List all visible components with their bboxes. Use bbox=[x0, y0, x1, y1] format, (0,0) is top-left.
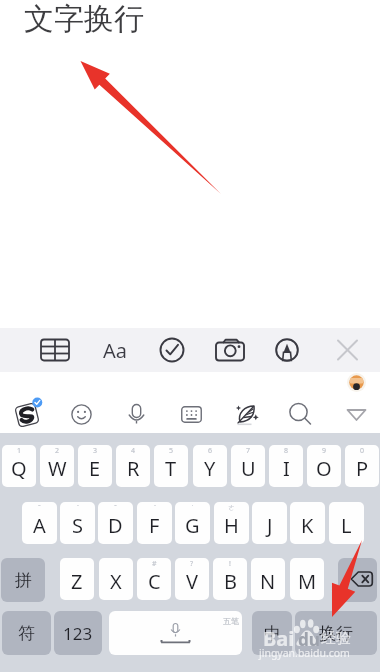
staticText: R bbox=[127, 455, 140, 482]
button[interactable]: 换行 bbox=[295, 611, 377, 655]
staticText: 1 bbox=[17, 446, 22, 456]
button[interactable]: ˊ bbox=[60, 502, 95, 544]
staticText: ㄜ bbox=[228, 503, 236, 512]
staticText: 中 bbox=[264, 623, 281, 644]
button[interactable]: Search bbox=[284, 398, 315, 429]
staticText: ˉ bbox=[38, 503, 41, 513]
staticText: J bbox=[267, 512, 273, 539]
button[interactable]: 0 bbox=[345, 445, 379, 487]
staticText: W bbox=[48, 455, 67, 482]
staticText: 9 bbox=[322, 446, 327, 456]
staticText: Aa bbox=[103, 337, 127, 364]
staticText: ! bbox=[229, 559, 231, 569]
staticText: E bbox=[89, 455, 101, 482]
button[interactable]: 6 bbox=[193, 445, 227, 487]
button[interactable]: Sogou input bbox=[11, 399, 43, 431]
button[interactable]: 7 bbox=[231, 445, 265, 487]
button[interactable]: 5 bbox=[154, 445, 188, 487]
button[interactable]: 1 bbox=[2, 445, 36, 487]
staticText: 4 bbox=[131, 446, 136, 456]
staticText: F bbox=[149, 512, 160, 539]
button[interactable]: Aa bbox=[95, 328, 135, 372]
staticText: du bbox=[298, 628, 320, 651]
staticText: 符 bbox=[18, 623, 35, 644]
button[interactable]: 123 bbox=[54, 611, 102, 655]
button[interactable]: Backspace bbox=[338, 558, 377, 602]
staticText: L bbox=[341, 512, 352, 539]
button[interactable]: 2 bbox=[40, 445, 74, 487]
staticText: G bbox=[185, 512, 200, 539]
staticText: T bbox=[165, 455, 177, 482]
staticText: ˇ bbox=[114, 503, 117, 513]
button[interactable]: Hide keyboard bbox=[341, 399, 372, 430]
staticText: Q bbox=[11, 455, 27, 482]
staticText: D bbox=[108, 512, 123, 539]
button[interactable]: 3 bbox=[78, 445, 112, 487]
staticText: jingyan.baidu.com bbox=[259, 646, 350, 660]
button[interactable]: ˙ bbox=[175, 502, 210, 544]
staticText: M bbox=[298, 568, 317, 595]
staticText: 8 bbox=[284, 446, 289, 456]
button[interactable]: 8 bbox=[269, 445, 303, 487]
button[interactable]: ˉ bbox=[22, 502, 57, 544]
staticText: O bbox=[316, 455, 332, 482]
staticText: K bbox=[301, 512, 314, 539]
button[interactable]: Draw bbox=[267, 328, 307, 372]
button[interactable]: M bbox=[290, 558, 324, 600]
button[interactable]: ? bbox=[175, 558, 209, 600]
staticText: B bbox=[224, 568, 237, 595]
button[interactable]: Voice input bbox=[121, 399, 152, 430]
button[interactable]: ˇ bbox=[98, 502, 133, 544]
button[interactable]: Space bbox=[109, 611, 242, 655]
button[interactable]: N bbox=[251, 558, 285, 600]
staticText: 换行 bbox=[319, 623, 353, 644]
button[interactable]: Z bbox=[60, 558, 94, 600]
staticText: S bbox=[72, 512, 83, 539]
staticText: 123 bbox=[63, 622, 93, 645]
button[interactable]: Checklist bbox=[152, 328, 192, 372]
staticText: ˋ bbox=[154, 503, 156, 513]
button[interactable]: # bbox=[137, 558, 171, 600]
staticText: C bbox=[148, 568, 161, 595]
staticText: 6 bbox=[208, 446, 213, 456]
staticText: 0 bbox=[360, 446, 365, 456]
button[interactable]: X bbox=[99, 558, 133, 600]
staticText: I bbox=[283, 455, 290, 482]
button[interactable]: K bbox=[290, 502, 325, 544]
button[interactable]: AI writing bbox=[231, 399, 262, 430]
staticText: H bbox=[224, 512, 239, 539]
staticText: 拼 bbox=[15, 570, 32, 591]
button[interactable]: 4 bbox=[116, 445, 150, 487]
staticText: P bbox=[356, 455, 369, 482]
staticText: 经验 bbox=[321, 629, 351, 648]
staticText: # bbox=[152, 559, 157, 569]
staticText: ˊ bbox=[77, 503, 79, 513]
staticText: 5 bbox=[169, 446, 174, 456]
staticText: Bai bbox=[263, 625, 295, 652]
button[interactable]: 拼 bbox=[1, 558, 45, 602]
button[interactable]: Camera bbox=[210, 328, 250, 372]
button[interactable]: 中 bbox=[252, 611, 292, 655]
staticText: A bbox=[33, 512, 46, 539]
button[interactable]: ! bbox=[213, 558, 247, 600]
button[interactable]: ㄜ bbox=[214, 502, 249, 544]
button[interactable]: 符 bbox=[2, 611, 51, 655]
button[interactable]: Insert table bbox=[35, 328, 75, 372]
button[interactable]: Emoji bbox=[66, 399, 97, 430]
button[interactable]: 9 bbox=[307, 445, 341, 487]
button[interactable]: Keyboard layout bbox=[176, 399, 207, 430]
staticText: 2 bbox=[55, 446, 60, 456]
staticText: V bbox=[186, 568, 198, 595]
button[interactable]: ˋ bbox=[137, 502, 172, 544]
staticText: Y bbox=[204, 455, 216, 482]
staticText: N bbox=[260, 568, 276, 595]
staticText: 7 bbox=[246, 446, 251, 456]
staticText: 五笔 bbox=[223, 616, 239, 626]
staticText: U bbox=[241, 455, 256, 482]
button[interactable]: Close bbox=[327, 328, 368, 372]
button[interactable]: L bbox=[329, 502, 364, 544]
button[interactable]: J bbox=[252, 502, 287, 544]
staticText: ˙ bbox=[192, 503, 194, 513]
staticText: Z bbox=[71, 568, 83, 595]
staticText: 文字换行 bbox=[24, 0, 144, 38]
